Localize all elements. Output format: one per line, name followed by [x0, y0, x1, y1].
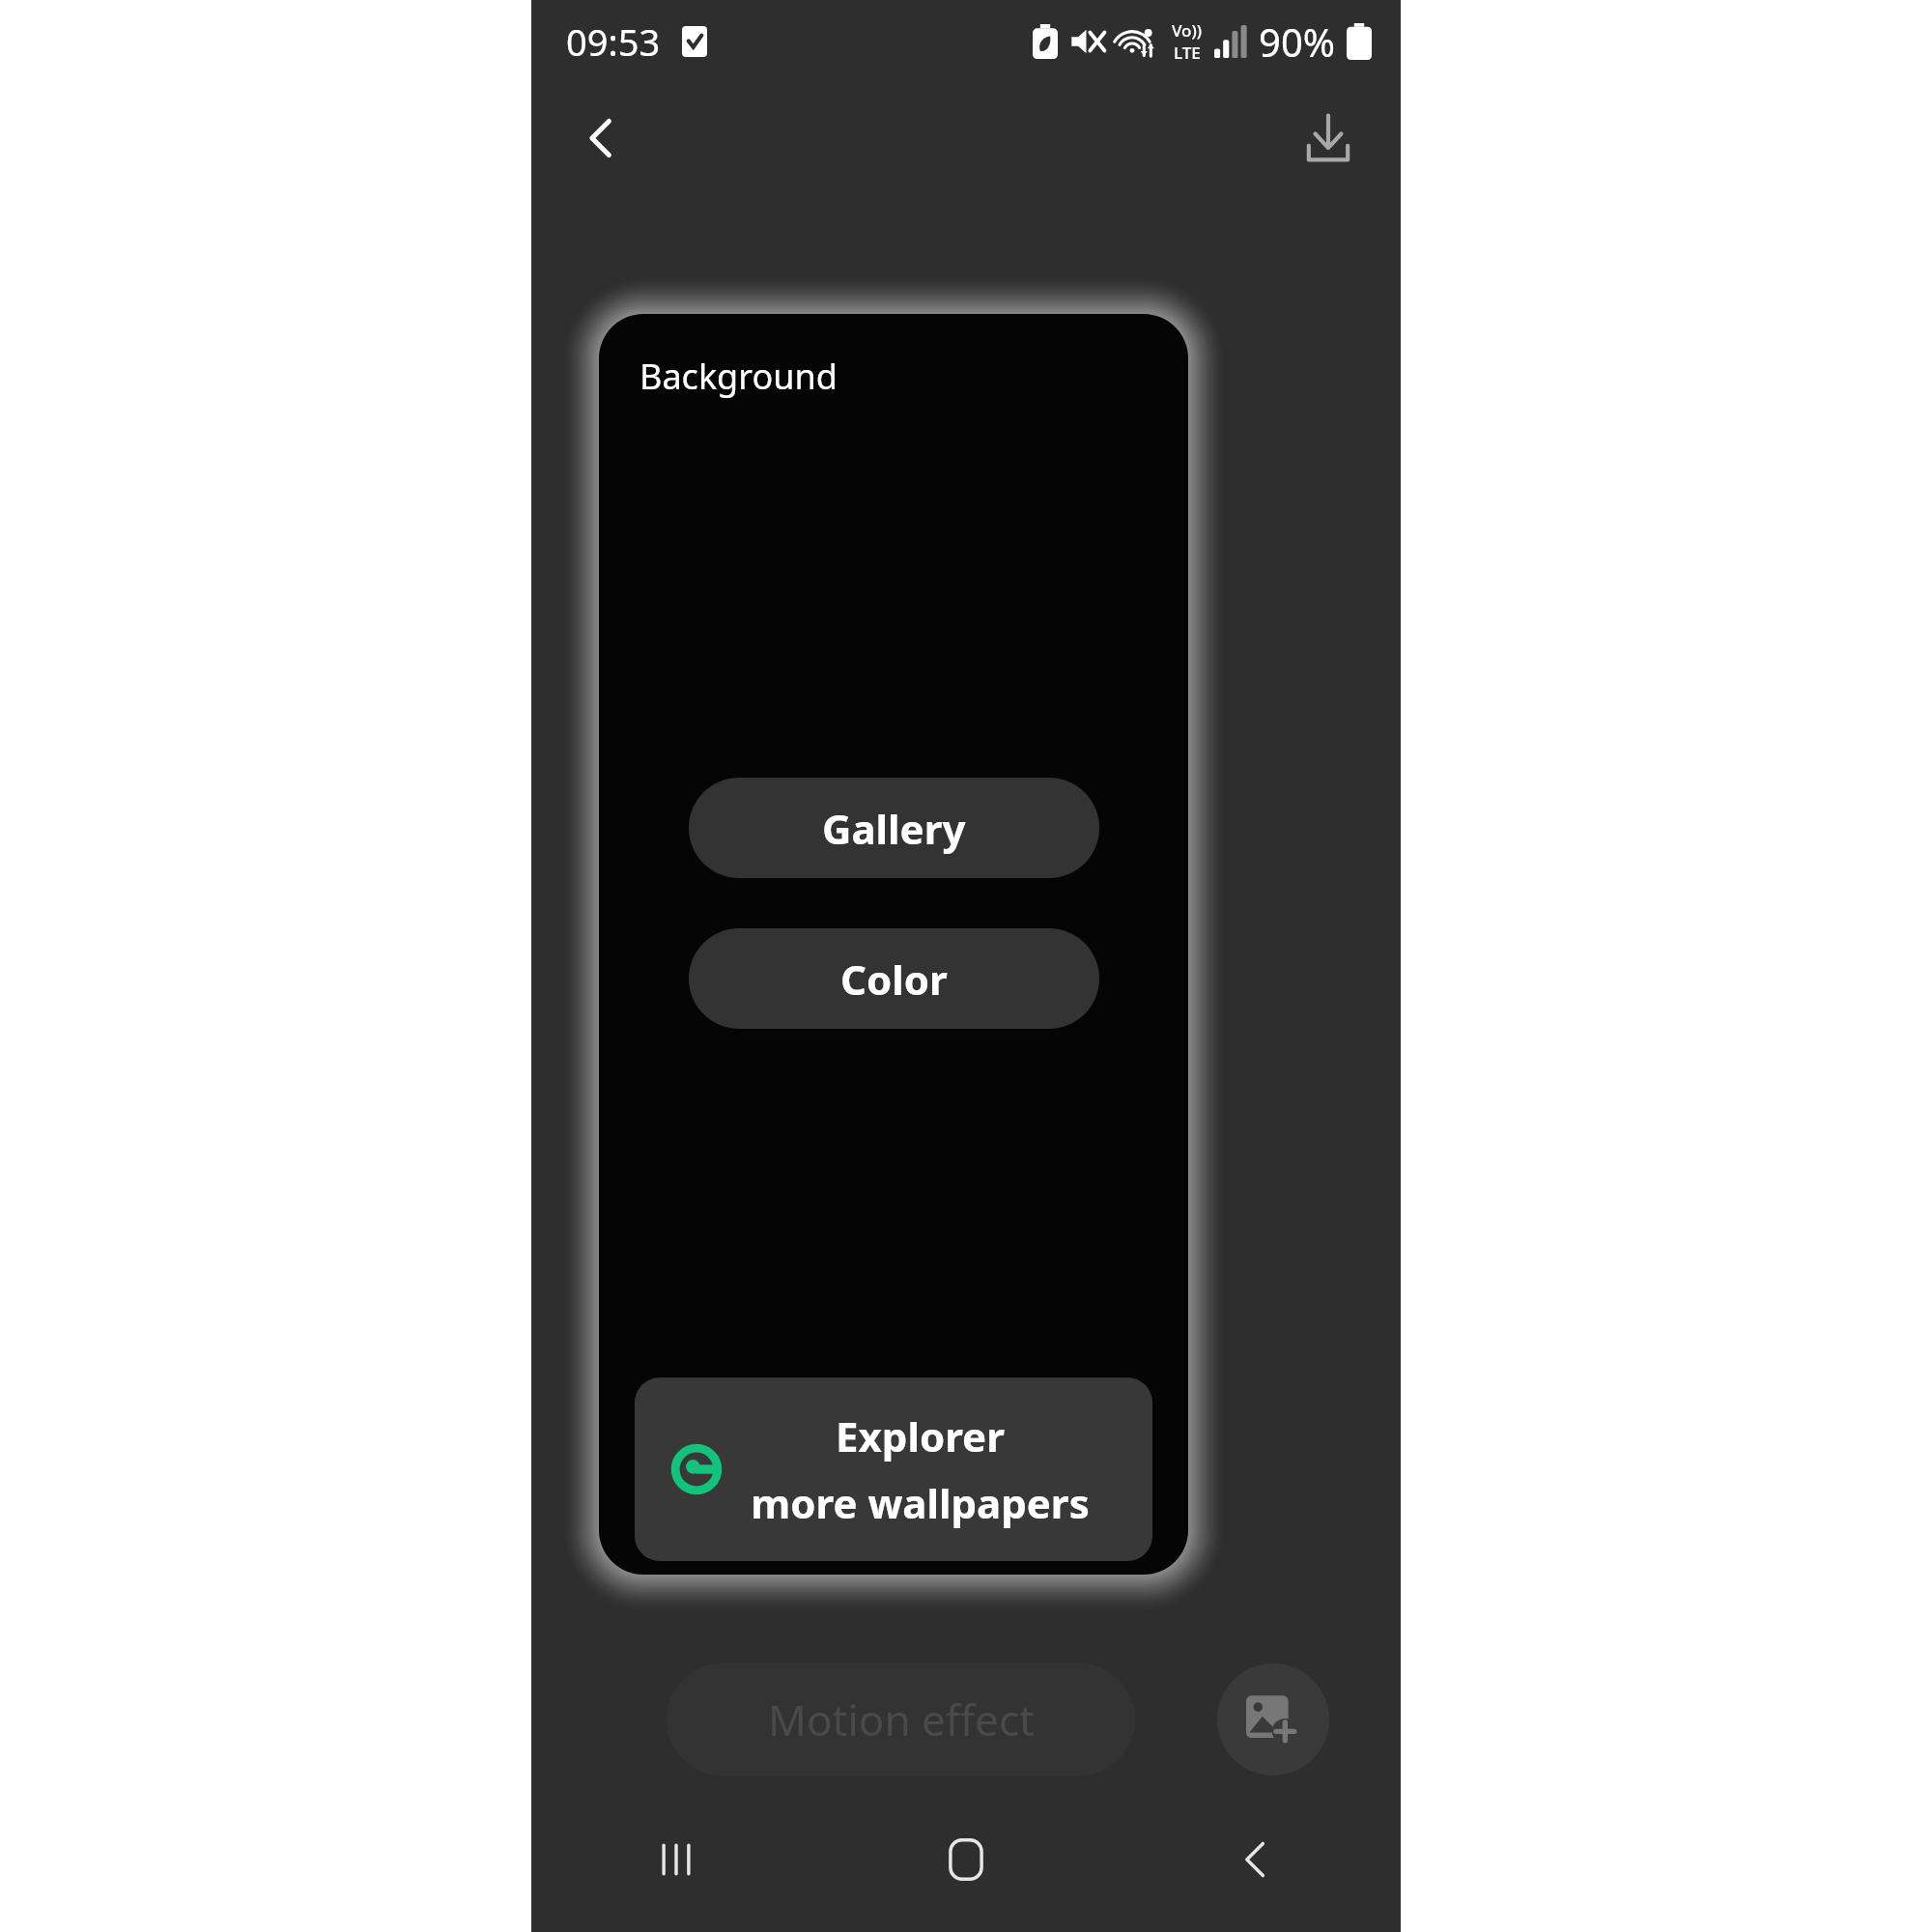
- button[interactable]: Color: [689, 928, 1099, 1029]
- button[interactable]: Add image: [1217, 1663, 1329, 1776]
- staticText: 90%: [1259, 15, 1335, 68]
- staticText: Gallery: [822, 801, 966, 856]
- staticText: Color: [840, 952, 948, 1007]
- staticText: Motion effect: [768, 1690, 1035, 1748]
- staticText: more wallpapers: [751, 1475, 1090, 1530]
- staticText: Explorer: [836, 1408, 1005, 1463]
- staticText: Vo)): [1172, 19, 1203, 42]
- button[interactable]: Download: [1285, 95, 1372, 182]
- button[interactable]: Explorer: [635, 1378, 1152, 1561]
- staticText: Background: [639, 353, 838, 400]
- button[interactable]: Back: [1111, 1787, 1401, 1932]
- staticText: 09:53: [566, 16, 661, 67]
- staticText: LTE: [1174, 42, 1201, 64]
- button[interactable]: Motion effect: [667, 1663, 1135, 1776]
- button[interactable]: Recents: [531, 1787, 821, 1932]
- button[interactable]: Back: [558, 95, 645, 182]
- button[interactable]: Gallery: [689, 778, 1099, 878]
- button[interactable]: Home: [821, 1787, 1111, 1932]
